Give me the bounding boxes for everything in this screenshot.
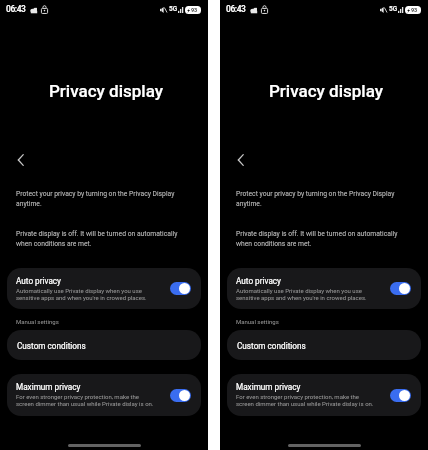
button[interactable]: Toggle on <box>390 389 411 402</box>
staticText: Privacy display <box>222 81 428 101</box>
staticText: Auto privacy <box>236 276 281 286</box>
button[interactable]: Toggle on <box>170 282 191 295</box>
staticText: Maximum privacy <box>236 382 301 392</box>
staticText: Automatically use Private display when y… <box>236 287 375 302</box>
button[interactable]: Auto privacy <box>227 268 421 309</box>
staticText: Private display is off. It will be turne… <box>236 230 404 248</box>
button[interactable]: Maximum privacy <box>7 374 201 416</box>
staticText: Auto privacy <box>16 276 61 286</box>
button[interactable]: Maximum privacy <box>227 374 421 416</box>
staticText: For even stronger privacy protection, ma… <box>236 393 375 408</box>
staticText: Custom conditions <box>237 341 306 351</box>
staticText: For even stronger privacy protection, ma… <box>16 393 155 408</box>
button[interactable]: Auto privacy <box>7 268 201 309</box>
staticText: Automatically use Private display when y… <box>16 287 155 302</box>
button[interactable]: Toggle on <box>390 282 411 295</box>
button[interactable]: Custom conditions <box>7 330 201 360</box>
staticText: Manual settings <box>16 318 59 325</box>
staticText: Private display is off. It will be turne… <box>16 230 184 248</box>
staticText: 93 <box>191 7 197 13</box>
staticText: 06:43 <box>226 4 246 14</box>
button[interactable]: Back <box>228 147 254 173</box>
staticText: 5G <box>389 5 398 13</box>
button[interactable]: Toggle on <box>170 389 191 402</box>
staticText: Manual settings <box>236 318 279 325</box>
button[interactable]: Back <box>8 147 34 173</box>
button[interactable]: Custom conditions <box>227 330 421 360</box>
staticText: Maximum privacy <box>16 382 81 392</box>
staticText: 06:43 <box>6 4 26 14</box>
staticText: Privacy display <box>2 81 210 101</box>
staticText: Protect your privacy by turning on the P… <box>16 190 184 208</box>
staticText: Custom conditions <box>17 341 86 351</box>
staticText: 93 <box>411 7 417 13</box>
staticText: Protect your privacy by turning on the P… <box>236 190 404 208</box>
staticText: 5G <box>169 5 178 13</box>
